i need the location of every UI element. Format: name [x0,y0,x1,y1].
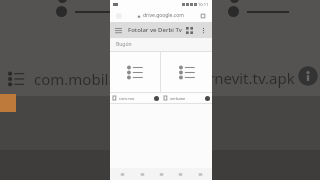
button[interactable]: Home [154,168,168,180]
button[interactable]: More options [200,27,207,34]
button[interactable]: Back [115,168,129,180]
staticText: com.mobil…certi.apk [119,96,136,101]
button[interactable] [110,52,160,92]
button[interactable]: Forward [135,168,149,180]
button[interactable]: Info [298,66,318,86]
staticText: drive.google.com [143,12,184,19]
button[interactable]: Menu [193,168,207,180]
button[interactable] [161,52,212,92]
button[interactable]: Tabs [200,13,206,19]
staticText: Fotolar ve Derbi Tv [128,26,182,34]
button[interactable]: Info [205,96,210,101]
button[interactable]: com.mobil… yso34 [0,62,320,96]
button[interactable]: verbanevit.v.apk [161,93,212,103]
staticText: rnevit.tv.apk [208,68,295,88]
staticText: Bugün [116,41,132,48]
button[interactable]: com.mobil…certi.apk [110,93,161,103]
button[interactable]: Grid view [186,27,193,34]
button[interactable]: Menu [110,22,212,38]
other: Refresh [116,13,122,19]
staticText: 10:11 [198,2,209,7]
staticText: com.mobil… yso34 [34,69,166,89]
other: Menu [115,27,122,34]
button[interactable]: Tabs [173,168,187,180]
button[interactable]: Info [154,96,159,101]
staticText: verbanevit.v.apk [170,96,187,101]
button[interactable]: Refresh [110,9,212,22]
